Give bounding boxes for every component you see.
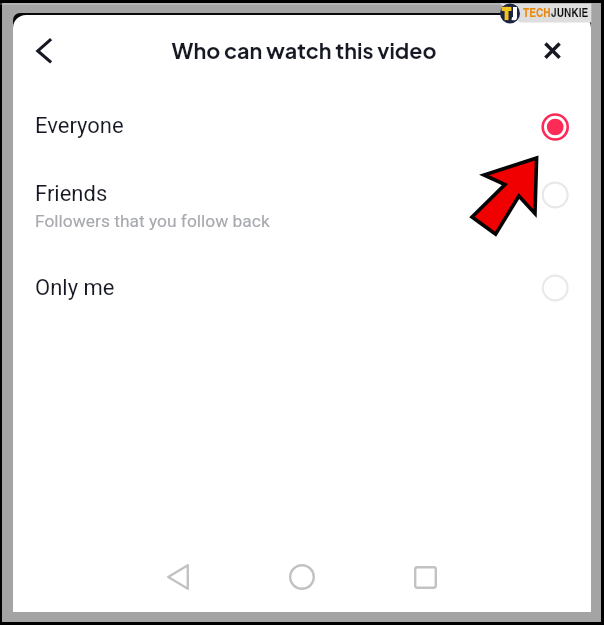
staticText: Followers that you follow back [35,211,270,231]
button[interactable]: Friends [13,167,591,239]
staticText: Friends [35,181,108,207]
button[interactable]: Back [159,556,201,598]
staticText: JUNKIE [551,3,589,21]
button[interactable]: Home [281,556,323,598]
staticText: Everyone [35,113,124,139]
button[interactable]: Close [531,30,573,72]
staticText: Only me [35,275,115,301]
staticText: TECH [523,3,551,21]
button[interactable]: Everyone [13,99,591,155]
button[interactable]: Recents [404,556,446,598]
button[interactable]: Only me [13,260,591,316]
staticText: Who can watch this video [15,37,591,64]
button[interactable]: Back [16,28,66,70]
